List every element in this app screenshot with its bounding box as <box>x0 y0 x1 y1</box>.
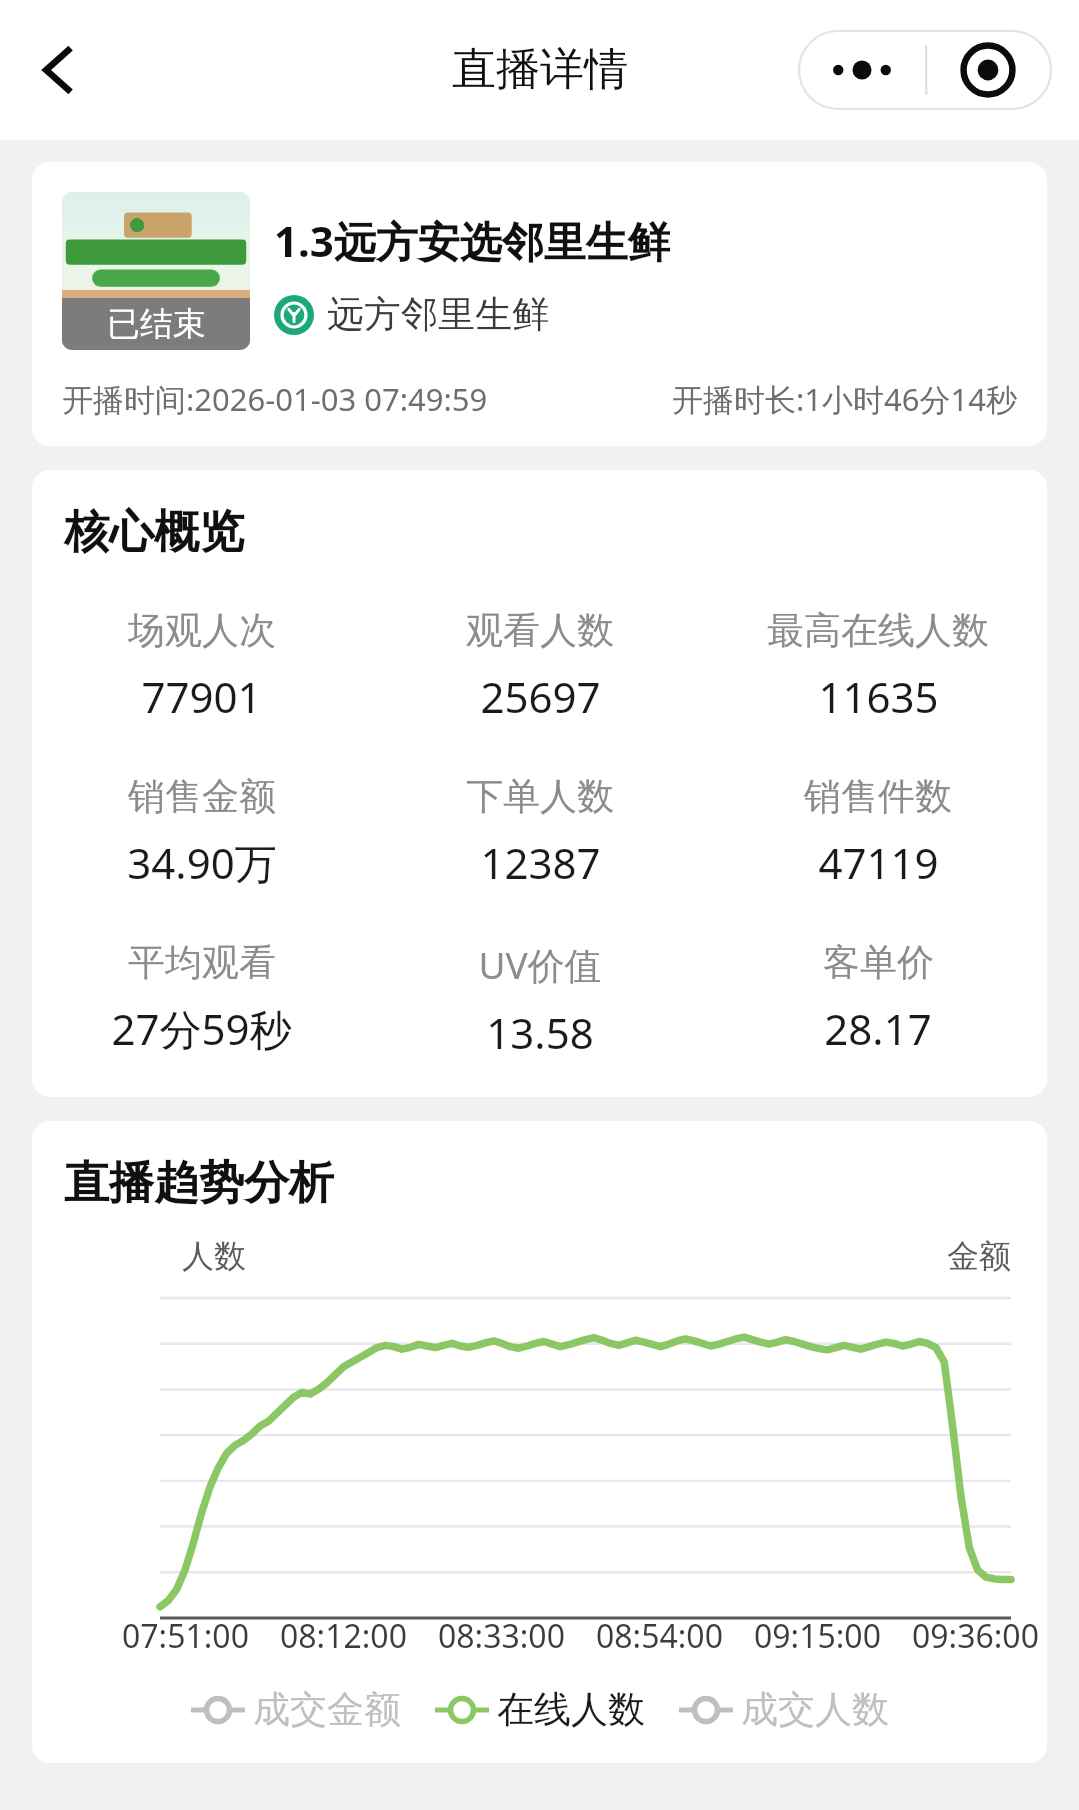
staticText: 场观人次 <box>128 607 276 654</box>
staticText: 观看人数 <box>466 607 614 654</box>
staticText: 平均观看 <box>128 939 276 986</box>
staticText: 直播详情 <box>452 42 628 97</box>
staticText: 直播趋势分析 <box>64 1155 334 1212</box>
staticText: 28.17 <box>824 1000 932 1057</box>
staticText: 成交人数 <box>741 1686 889 1733</box>
staticText: 25697 <box>480 668 601 725</box>
staticText: 客单价 <box>823 939 934 986</box>
button[interactable]: Back <box>18 29 100 111</box>
staticText: 开播时长:1小时46分14秒 <box>672 378 1017 420</box>
button[interactable]: 已结束 <box>32 162 1047 446</box>
staticText: 成交金额 <box>253 1686 401 1733</box>
staticText: 销售件数 <box>804 773 952 820</box>
staticText: 08:12:00 <box>280 1614 407 1658</box>
staticText: 已结束 <box>107 303 206 345</box>
staticText: 34.90万 <box>127 834 277 891</box>
button[interactable]: Close <box>925 31 1051 109</box>
staticText: 27分59秒 <box>111 1000 292 1057</box>
staticText: 人数 <box>182 1236 246 1276</box>
staticText: 在线人数 <box>497 1686 645 1733</box>
staticText: 09:15:00 <box>754 1614 881 1658</box>
staticText: 最高在线人数 <box>767 607 989 654</box>
staticText: 13.58 <box>486 1004 594 1061</box>
button[interactable]: 在线人数 <box>435 1686 645 1733</box>
staticText: 11635 <box>818 668 939 725</box>
staticText: 12387 <box>480 834 601 891</box>
button[interactable]: 成交人数 <box>679 1686 889 1733</box>
staticText: 1.3远方安选邻里生鲜 <box>274 212 670 269</box>
staticText: 77901 <box>141 668 262 725</box>
button[interactable]: More <box>799 31 925 109</box>
staticText: UV价值 <box>478 939 602 990</box>
staticText: 08:33:00 <box>438 1614 565 1658</box>
staticText: 开播时间:2026-01-03 07:49:59 <box>62 378 672 420</box>
staticText: 核心概览 <box>64 504 244 561</box>
staticText: 下单人数 <box>466 773 614 820</box>
staticText: 08:54:00 <box>596 1614 723 1658</box>
staticText: 销售金额 <box>128 773 276 820</box>
staticText: 07:51:00 <box>122 1614 249 1658</box>
staticText: 47119 <box>818 834 939 891</box>
staticText: 远方邻里生鲜 <box>327 291 549 338</box>
staticText: 09:36:00 <box>912 1614 1039 1658</box>
button[interactable]: 成交金额 <box>191 1686 401 1733</box>
staticText: 金额 <box>947 1236 1011 1276</box>
